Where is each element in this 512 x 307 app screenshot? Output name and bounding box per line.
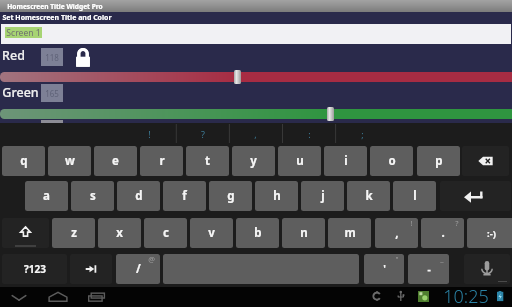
button[interactable]: ! <box>123 123 176 144</box>
button[interactable]: ' <box>364 254 404 284</box>
staticText: y <box>250 153 257 169</box>
button[interactable]: c <box>144 218 187 248</box>
staticText: Homescreen Title Widget Pro <box>7 2 103 11</box>
button[interactable]: ; <box>336 123 389 144</box>
button[interactable]: , <box>375 218 418 248</box>
button[interactable]: 118 <box>41 48 63 66</box>
staticText: Screen 1 <box>6 27 41 38</box>
button[interactable]: m <box>328 218 371 248</box>
staticText: v <box>208 225 215 241</box>
staticText: o <box>388 153 396 169</box>
staticText: / <box>136 261 141 277</box>
staticText: . <box>441 225 445 241</box>
button[interactable]: b <box>236 218 279 248</box>
button[interactable]: ? <box>176 123 229 144</box>
staticText: j <box>321 188 325 204</box>
button[interactable]: z <box>52 218 95 248</box>
button[interactable]: : <box>283 123 336 144</box>
staticText: i <box>344 153 348 169</box>
button[interactable]: ?123 <box>2 254 67 284</box>
staticText: t <box>205 153 210 169</box>
staticText: ; <box>361 128 364 140</box>
button[interactable]: l <box>393 181 436 211</box>
button[interactable]: p <box>417 146 460 176</box>
button[interactable]: a <box>25 181 68 211</box>
staticText: " <box>395 254 399 264</box>
staticText: f <box>182 188 187 204</box>
staticText: ! <box>410 218 413 228</box>
button[interactable]: e <box>94 146 137 176</box>
button[interactable]: . <box>421 218 464 248</box>
button[interactable]: y <box>232 146 275 176</box>
button[interactable]: w <box>48 146 91 176</box>
button[interactable]: t <box>186 146 229 176</box>
staticText: r <box>159 153 165 169</box>
staticText: s <box>90 188 96 204</box>
staticText: n <box>300 225 308 241</box>
button[interactable]: d <box>117 181 160 211</box>
staticText: c <box>163 225 169 241</box>
staticText: e <box>112 153 119 169</box>
button[interactable]: r <box>140 146 183 176</box>
staticText: ? <box>455 218 459 228</box>
staticText: 10:25 <box>443 284 489 307</box>
staticText: a <box>43 188 50 204</box>
button[interactable]: q <box>2 146 45 176</box>
staticText: b <box>254 225 262 241</box>
button[interactable]: / <box>116 254 160 284</box>
staticText: 165 <box>45 88 59 99</box>
button[interactable]: Lock <box>75 47 91 71</box>
button[interactable]: Slider <box>234 70 241 84</box>
staticText: , <box>395 225 399 241</box>
button[interactable]: s <box>71 181 114 211</box>
button[interactable]: Recent apps <box>76 287 114 307</box>
button[interactable]: i <box>324 146 367 176</box>
staticText: Green <box>2 84 39 101</box>
staticText: g <box>227 188 235 204</box>
button[interactable]: n <box>282 218 325 248</box>
button[interactable]: u <box>278 146 321 176</box>
button[interactable]: Hide keyboard <box>0 287 38 307</box>
staticText: 118 <box>45 52 59 63</box>
button[interactable]: f <box>163 181 206 211</box>
staticText: :-) <box>487 227 496 240</box>
button[interactable]: o <box>370 146 413 176</box>
staticText: ' <box>383 262 386 276</box>
button[interactable]: Tab <box>70 254 112 284</box>
staticText: z <box>71 225 77 241</box>
button[interactable]: Backspace <box>462 146 509 176</box>
staticText: ? <box>201 128 205 140</box>
button[interactable]: k <box>347 181 390 211</box>
staticText: : <box>308 128 311 140</box>
staticText: _ <box>440 254 444 264</box>
staticText: q <box>20 153 28 169</box>
staticText: l <box>413 188 417 204</box>
staticText: Set Homescreen Title and Color <box>2 13 112 23</box>
button[interactable]: Slider <box>327 107 334 121</box>
button[interactable]: j <box>301 181 344 211</box>
button[interactable]: Enter <box>440 181 511 211</box>
staticText: ?123 <box>24 262 46 276</box>
button[interactable]: h <box>255 181 298 211</box>
button[interactable]: Sync <box>371 290 383 304</box>
button[interactable]: Screen 1 <box>1 24 511 44</box>
button[interactable]: x <box>98 218 141 248</box>
button[interactable]: Shift <box>2 218 49 248</box>
button[interactable]: Home <box>39 287 77 307</box>
staticText: h <box>273 188 281 204</box>
button[interactable]: 165 <box>41 84 63 102</box>
staticText: @ <box>148 254 155 264</box>
staticText: m <box>344 225 356 241</box>
staticText: d <box>135 188 143 204</box>
button[interactable]: - <box>408 254 449 284</box>
button[interactable]: g <box>209 181 252 211</box>
staticText: p <box>435 153 443 169</box>
staticText: , <box>254 128 257 140</box>
button[interactable]: :-) <box>467 218 512 248</box>
button[interactable]: v <box>190 218 233 248</box>
staticText: - <box>427 262 431 276</box>
button[interactable]: , <box>229 123 282 144</box>
button[interactable]: Voice input <box>464 254 510 284</box>
